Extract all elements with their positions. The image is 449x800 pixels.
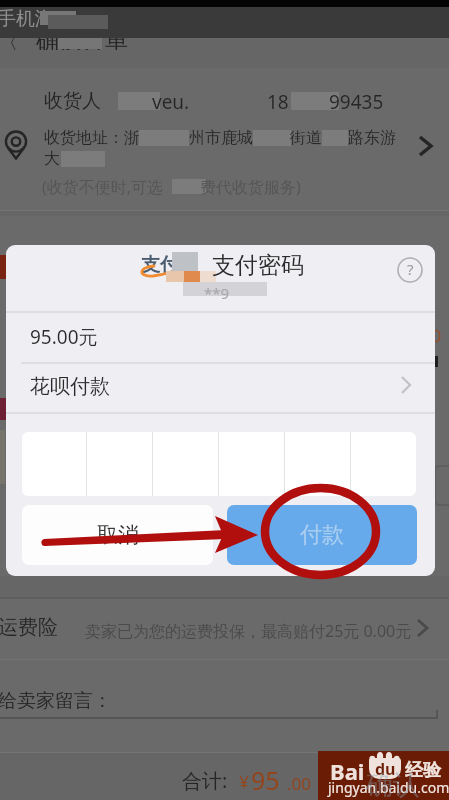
staticText: 18	[267, 89, 289, 115]
staticText: 卖家已为您的运费投保，最高赔付25元 0.00元	[85, 620, 412, 642]
button[interactable]: 取消	[22, 505, 213, 565]
staticText: jingyan.baidu.com	[328, 778, 449, 797]
staticText: 0	[432, 325, 442, 347]
staticText: 合计:	[182, 767, 228, 794]
staticText: 支付宝	[141, 253, 198, 277]
staticText: 运费险	[0, 615, 58, 640]
staticText: 收货地址：浙	[44, 128, 140, 148]
staticText: veu.	[152, 89, 190, 115]
button[interactable]: 花呗付款	[6, 364, 435, 408]
staticText: 95	[251, 763, 280, 797]
staticText: 95.00元	[30, 324, 98, 350]
staticText: 花呗付款	[30, 374, 110, 399]
staticText: ¥	[239, 770, 249, 793]
staticText: 大	[44, 149, 60, 169]
staticText: 经验	[405, 759, 441, 782]
staticText: 〈	[0, 28, 20, 58]
staticText: (收货不便时,可选	[42, 176, 164, 198]
staticText: 确认订单	[36, 27, 128, 56]
staticText: 费代收货服务)	[200, 176, 301, 198]
button[interactable]: Password input	[22, 432, 416, 496]
button[interactable]: 运费险	[0, 599, 449, 659]
staticText: 99435	[329, 89, 384, 115]
staticText: 确认	[366, 768, 420, 800]
staticText: 付款	[300, 521, 344, 549]
staticText: 支付密码	[212, 251, 304, 280]
staticText: 收货人	[44, 89, 101, 113]
staticText: 街道	[290, 128, 322, 148]
staticText: **9	[204, 283, 230, 303]
staticText: du	[375, 758, 396, 779]
button[interactable]: Help	[397, 257, 423, 283]
staticText: .00	[287, 772, 312, 795]
staticText: Bai	[330, 756, 365, 786]
staticText: ?	[407, 259, 414, 279]
staticText: 州市鹿城	[189, 128, 253, 148]
staticText: 路东游	[348, 128, 396, 148]
button[interactable]: 付款	[227, 505, 417, 565]
staticText: 手机淘	[0, 7, 54, 31]
staticText: 给卖家留言：	[0, 689, 112, 713]
staticText: 取消	[97, 522, 139, 548]
